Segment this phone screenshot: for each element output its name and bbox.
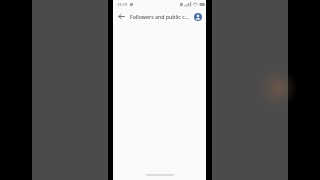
button[interactable]: Account xyxy=(192,11,203,22)
staticText: 13:19 xyxy=(117,2,128,7)
button[interactable]: Back xyxy=(116,11,127,22)
staticText: Followers and public content xyxy=(130,13,190,20)
